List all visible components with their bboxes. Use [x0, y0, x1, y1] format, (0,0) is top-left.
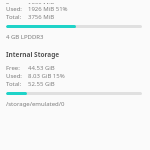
button[interactable]: Free:: [6, 1, 142, 41]
staticText: Used:: [6, 5, 24, 13]
staticText: Free:: [6, 1, 24, 4]
staticText: Total:: [6, 80, 24, 88]
staticText: /storage/emulated/0: [6, 100, 65, 108]
staticText: Used:: [6, 72, 24, 80]
staticText: Internal Storage: [6, 50, 60, 59]
staticText: 4 GB LPDDR3: [6, 33, 44, 41]
staticText: Total:: [6, 13, 24, 21]
staticText: 8.03 GiB 15%: [28, 72, 65, 80]
staticText: 1926 MiB 51%: [28, 5, 68, 13]
staticText: 52.55 GiB: [28, 80, 55, 88]
button[interactable]: Internal Storage: [6, 50, 142, 108]
staticText: 1830 MiB: [28, 1, 55, 4]
staticText: Free:: [6, 64, 24, 72]
staticText: 44.53 GiB: [28, 64, 55, 72]
staticText: 3756 MiB: [28, 13, 55, 21]
